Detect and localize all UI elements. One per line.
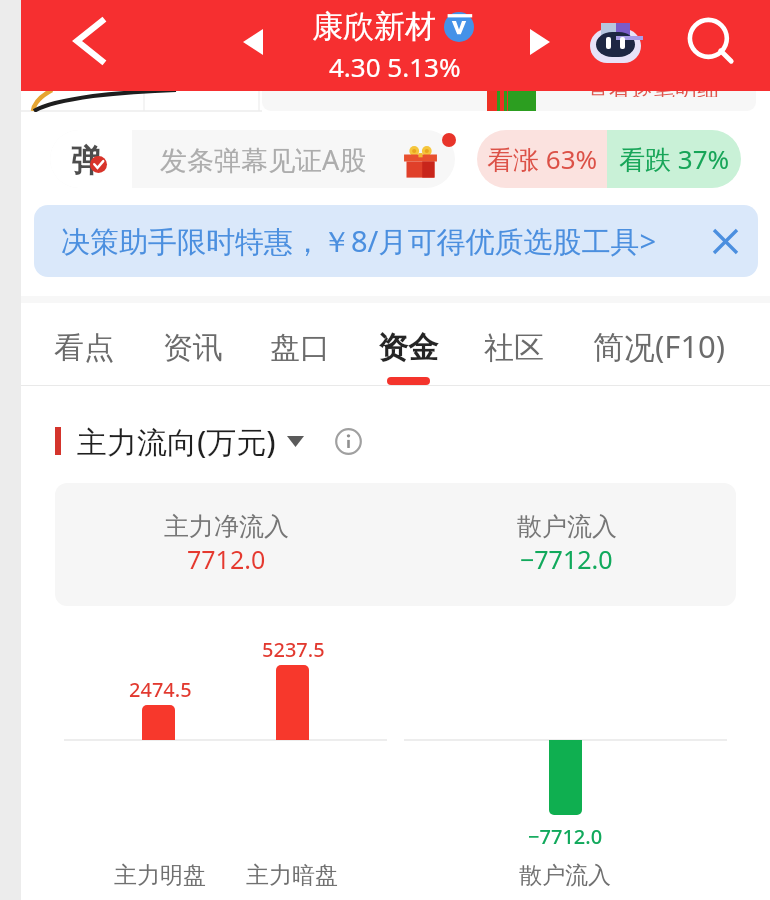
button[interactable]: Next stock [519, 21, 561, 63]
staticText: 资金 [378, 329, 438, 367]
staticText: 盘口 [270, 329, 330, 367]
staticText: 社区 [484, 329, 544, 367]
button[interactable]: 主力净流入 [55, 483, 736, 606]
button[interactable]: 资金 [354, 303, 462, 386]
button[interactable]: Assistant [587, 14, 645, 72]
staticText: 主力明盘 [114, 861, 206, 890]
staticText: 主力暗盘 [246, 861, 338, 890]
button[interactable]: 看点 [30, 303, 138, 386]
staticText: 看涨 63% [487, 141, 598, 177]
button[interactable]: Previous stock [232, 21, 274, 63]
button[interactable]: Close [697, 213, 753, 269]
staticText: −7712.0 [528, 823, 603, 850]
button[interactable]: Search [683, 13, 739, 69]
button[interactable]: Info [323, 416, 373, 466]
button[interactable]: 简况(F10) [589, 303, 729, 386]
staticText: 散户流入 [519, 861, 611, 890]
staticText: 2474.5 [129, 676, 192, 703]
button[interactable]: 决策助手限时特惠，￥8/月可得优质选股工具> [34, 205, 758, 277]
button[interactable]: 盘口 [246, 303, 354, 386]
staticText: 决策助手限时特惠，￥8/月可得优质选股工具> [61, 221, 656, 261]
staticText: 查看逐笔明细 [587, 91, 719, 97]
staticText: 资讯 [163, 329, 223, 367]
staticText: 4.30 5.13% [329, 49, 461, 84]
staticText: 弹 [71, 141, 102, 180]
button[interactable]: 弹 [50, 130, 455, 188]
staticText: 5237.5 [262, 636, 325, 663]
staticText: 康欣新材 [312, 7, 436, 46]
button[interactable]: 看涨 63% [477, 130, 741, 188]
staticText: 主力净流入 [164, 511, 289, 542]
button[interactable]: 社区 [460, 303, 568, 386]
button[interactable]: 主力流向(万元) [77, 420, 304, 462]
staticText: 7712.0 [187, 542, 266, 576]
staticText: 简况(F10) [593, 325, 726, 367]
button[interactable]: 资讯 [139, 303, 247, 386]
staticText: −7712.0 [520, 542, 613, 576]
staticText: 发条弹幕见证A股 [160, 141, 367, 178]
staticText: 看跌 37% [619, 141, 730, 177]
staticText: 散户流入 [517, 511, 617, 542]
button[interactable]: Back [60, 13, 116, 69]
staticText: 看点 [54, 329, 114, 367]
staticText: 主力流向(万元) [77, 421, 276, 462]
